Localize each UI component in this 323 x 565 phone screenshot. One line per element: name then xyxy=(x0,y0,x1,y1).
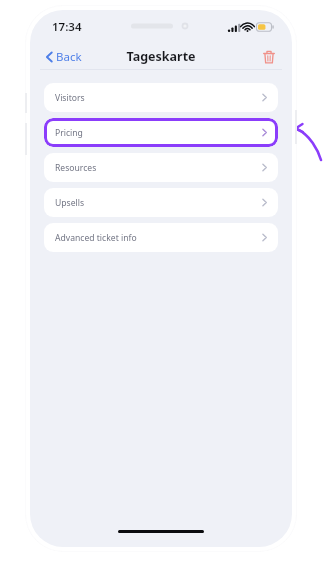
button[interactable]: Upsells xyxy=(44,188,278,217)
button[interactable]: Back xyxy=(42,46,86,68)
staticText: Visitors xyxy=(55,92,85,104)
button[interactable]: Advanced ticket info xyxy=(44,223,278,252)
staticText: Back xyxy=(56,49,82,65)
button[interactable]: Visitors xyxy=(44,83,278,112)
button[interactable]: Resources xyxy=(44,153,278,182)
staticText: Tageskarte xyxy=(126,48,196,65)
staticText: 17:34 xyxy=(52,19,82,35)
button[interactable]: Delete xyxy=(260,47,278,67)
button[interactable]: Pricing xyxy=(44,118,278,147)
staticText: Upsells xyxy=(55,197,85,209)
staticText: Advanced ticket info xyxy=(55,232,137,244)
staticText: Pricing xyxy=(55,127,83,139)
staticText: Resources xyxy=(55,162,97,174)
